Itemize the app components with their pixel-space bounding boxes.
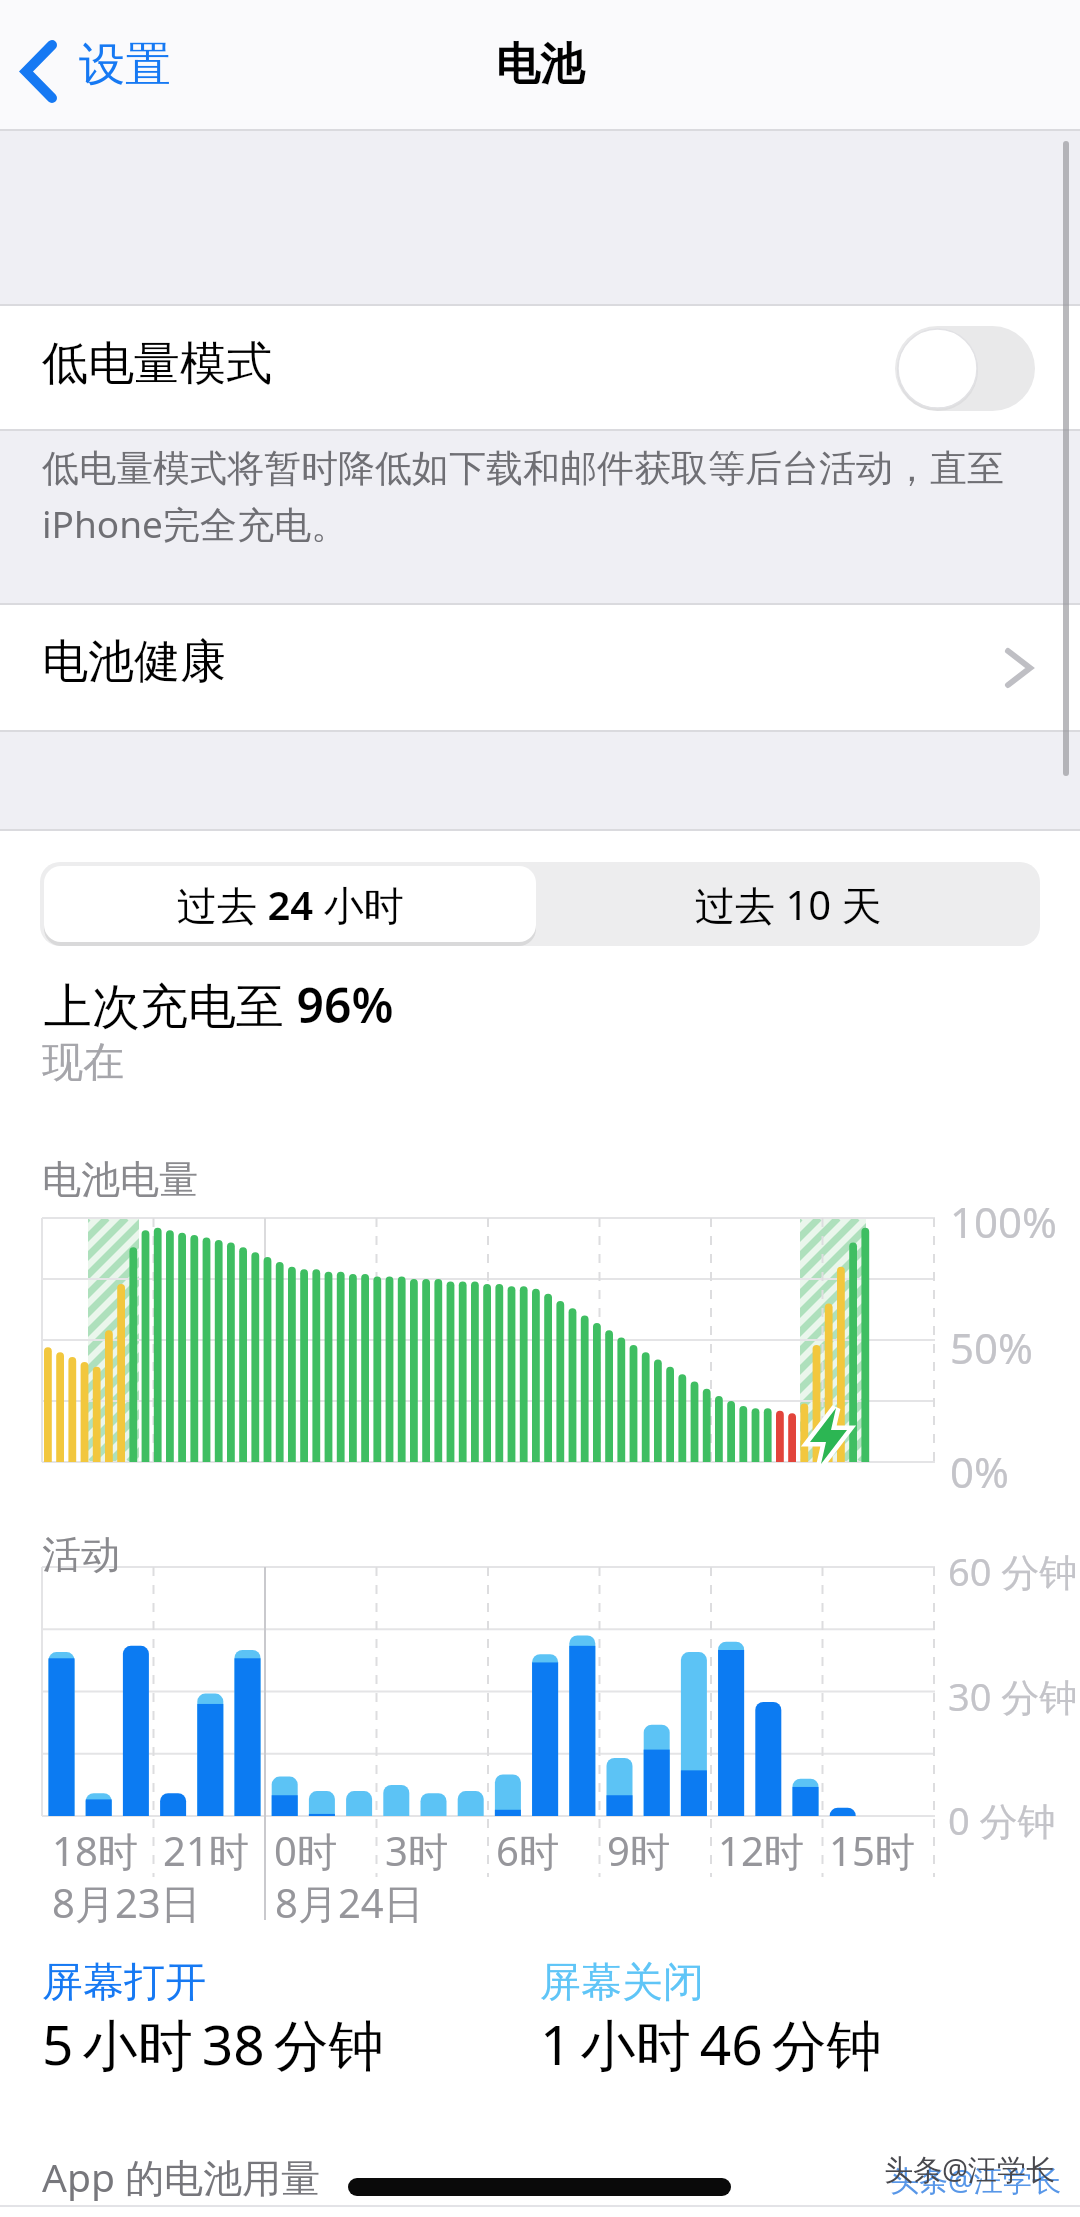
staticText: 电池健康 (42, 633, 226, 691)
staticText: 5 小时 38 分钟 (42, 2006, 384, 2081)
staticText: 低电量模式将暂时降低如下载和邮件获取等后台活动，直至 (42, 445, 1004, 492)
staticText: iPhone完全充电。 (42, 498, 348, 549)
staticText: 设置 (79, 36, 171, 94)
staticText: 9时 (607, 1823, 670, 1878)
staticText: 0% (950, 1443, 1009, 1500)
staticText: 头条@汪学长 (884, 2149, 1056, 2189)
staticText: 100% (950, 1193, 1057, 1250)
staticText: 屏幕打开 (42, 1957, 206, 2009)
staticText: 电池电量 (42, 1155, 198, 1204)
staticText: 头条@汪学长 (890, 2160, 1062, 2200)
button[interactable] (0, 306, 1080, 429)
staticText: 18时 (52, 1823, 138, 1878)
staticText: 6时 (496, 1823, 559, 1878)
staticText: 上次充电至 96% (44, 972, 394, 1038)
staticText: 50% (950, 1319, 1033, 1376)
staticText: 过去 10 天 (695, 877, 882, 932)
staticText: 60 分钟 (948, 1545, 1078, 1597)
staticText: 3时 (385, 1823, 448, 1878)
staticText: 8月24日 (275, 1875, 424, 1930)
staticText: 30 分钟 (948, 1670, 1078, 1722)
button[interactable]: 过去 10 天 (540, 866, 1036, 942)
staticText: 1 小时 46 分钟 (540, 2006, 882, 2081)
button[interactable] (16, 34, 266, 116)
staticText: 0 分钟 (948, 1794, 1056, 1846)
staticText: 现在 (42, 1037, 124, 1089)
staticText: 15时 (829, 1823, 915, 1878)
staticText: 21时 (163, 1823, 249, 1878)
staticText: 活动 (42, 1530, 120, 1579)
staticText: 12时 (718, 1823, 804, 1878)
button[interactable] (0, 605, 1080, 730)
staticText: 电池 (496, 37, 584, 92)
staticText: 过去 24 小时 (177, 877, 404, 932)
staticText: 低电量模式 (42, 335, 272, 393)
staticText: 0时 (274, 1823, 337, 1878)
button[interactable] (895, 326, 1035, 411)
staticText: 8月23日 (52, 1875, 201, 1930)
staticText: 屏幕关闭 (540, 1957, 704, 2009)
button[interactable]: 过去 24 小时 (44, 866, 536, 942)
staticText: App 的电池用量 (42, 2150, 321, 2203)
